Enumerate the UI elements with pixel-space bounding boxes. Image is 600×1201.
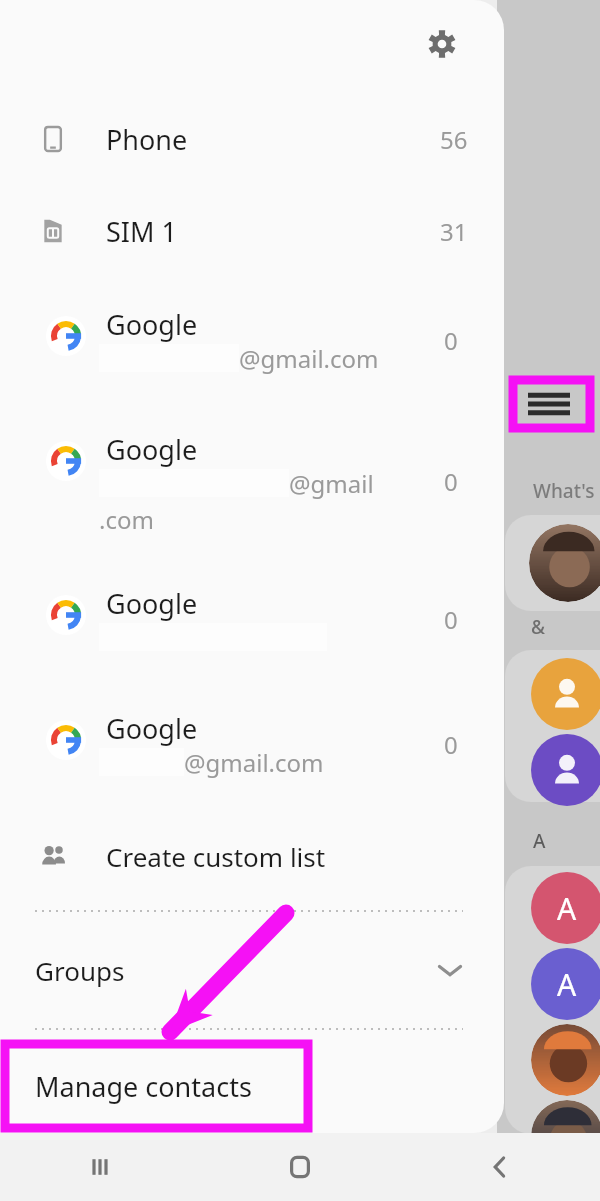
button[interactable]: Google xyxy=(0,421,504,541)
staticText: A xyxy=(533,828,546,854)
button[interactable] xyxy=(529,524,600,602)
button[interactable]: Phone xyxy=(0,107,504,171)
staticText: SIM 1 xyxy=(106,213,177,250)
button[interactable]: Manage contacts xyxy=(0,1050,504,1122)
staticText: 0 xyxy=(444,465,458,498)
staticText: @gmail xyxy=(289,467,374,500)
staticText: Create custom list xyxy=(106,839,326,874)
staticText: 31 xyxy=(440,215,468,248)
button[interactable]: Home xyxy=(200,1133,400,1201)
button[interactable]: Settings xyxy=(418,20,466,68)
staticText: Google xyxy=(106,306,198,343)
button[interactable]: Google xyxy=(0,575,504,670)
button[interactable]: Recents xyxy=(0,1133,200,1201)
staticText: 0 xyxy=(444,728,458,761)
button[interactable] xyxy=(531,1100,600,1172)
button[interactable]: A xyxy=(531,948,600,1020)
button[interactable]: SIM 1 xyxy=(0,199,504,263)
button[interactable] xyxy=(531,658,600,730)
button[interactable]: Create custom list xyxy=(0,828,504,884)
staticText: Phone xyxy=(106,121,188,158)
staticText: 56 xyxy=(440,123,468,156)
staticText: @gmail.com xyxy=(184,746,324,779)
button[interactable] xyxy=(531,734,600,806)
button[interactable]: Back xyxy=(400,1133,600,1201)
button[interactable]: Google xyxy=(0,296,504,391)
button[interactable]: A xyxy=(531,872,600,944)
staticText: @gmail.com xyxy=(239,342,379,375)
staticText: Google xyxy=(106,431,198,468)
staticText: What's xyxy=(533,478,595,504)
button[interactable]: Groups xyxy=(0,938,504,1002)
button[interactable] xyxy=(531,1024,600,1096)
staticText: A xyxy=(557,964,577,1005)
staticText: Google xyxy=(106,710,198,747)
button[interactable]: Google xyxy=(0,700,504,795)
staticText: 0 xyxy=(444,324,458,357)
staticText: .com xyxy=(99,503,154,536)
staticText: & xyxy=(531,614,546,640)
button[interactable]: Open navigation menu xyxy=(517,382,581,426)
staticText: A xyxy=(557,888,577,929)
staticText: Manage contacts xyxy=(35,1068,252,1105)
staticText: Groups xyxy=(35,953,125,988)
staticText: 0 xyxy=(444,603,458,636)
staticText: Google xyxy=(106,585,198,622)
